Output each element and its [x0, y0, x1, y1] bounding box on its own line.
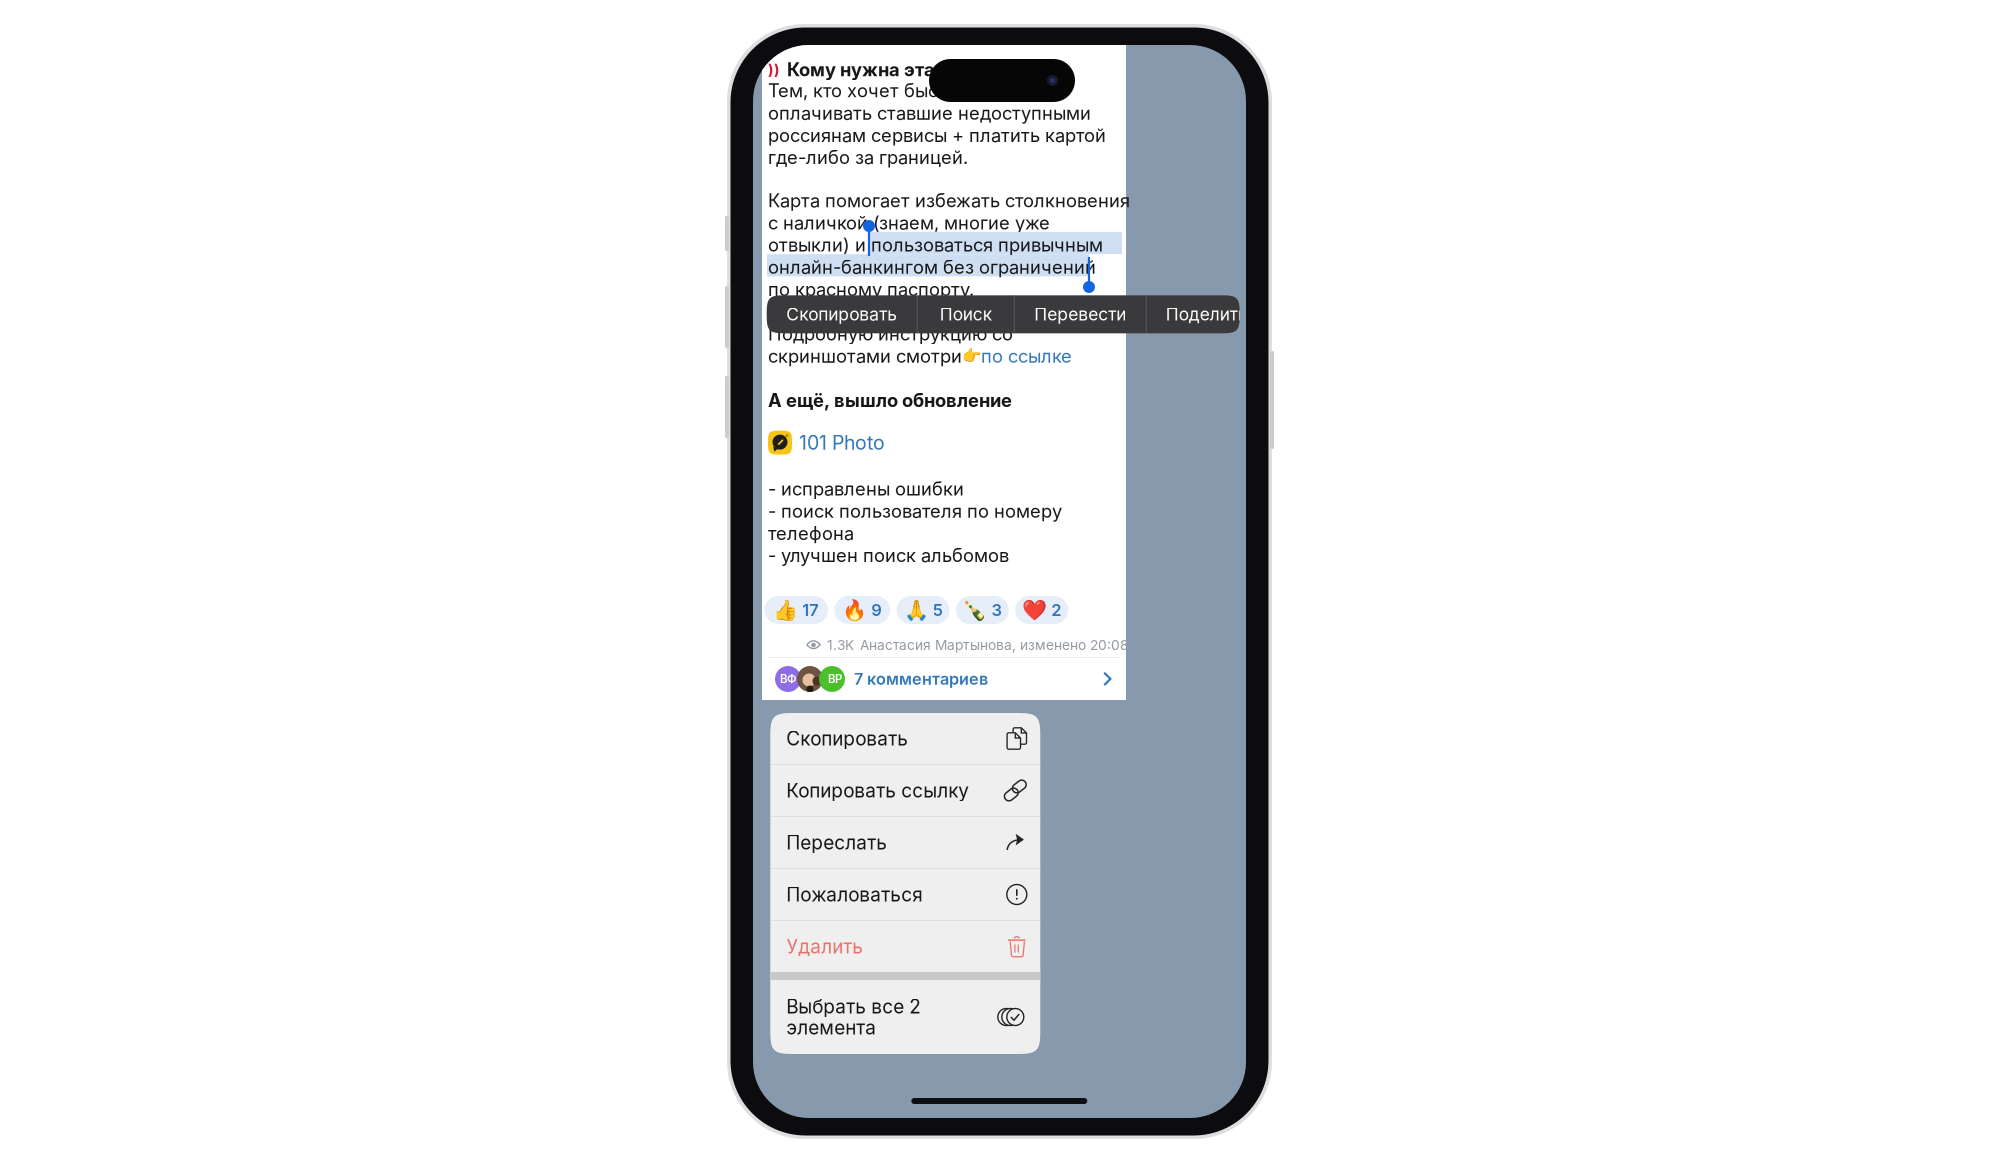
staticText: 9 — [871, 600, 882, 620]
staticText: Поделиться — [1166, 304, 1268, 325]
staticText: 7 комментариев — [854, 669, 988, 689]
button[interactable]: по ссылке — [981, 345, 1072, 367]
staticText: - поиск пользователя по номеру — [768, 500, 1062, 522]
staticText: 3 — [991, 600, 1002, 620]
staticText: ВР — [828, 672, 842, 686]
staticText: онлайн-банкингом без ограничений — [768, 256, 1096, 278]
button[interactable]: Поделиться — [1147, 295, 1287, 333]
staticText: ВФ — [780, 672, 796, 686]
staticText: Пожаловаться — [786, 883, 922, 906]
staticText: 👍 — [773, 598, 798, 622]
staticText: 5 — [933, 600, 943, 620]
staticText: Скопировать — [786, 727, 908, 750]
staticText: 101 Photo — [799, 431, 885, 454]
staticText: Скопировать — [786, 304, 897, 325]
button[interactable]: Нравится, 17 — [764, 596, 828, 624]
staticText: 🔥 — [842, 598, 867, 622]
staticText: 1.3K — [827, 637, 854, 653]
button[interactable]: Огонь, 9 — [834, 596, 890, 624]
button[interactable]: Копировать ссылку — [770, 765, 1040, 816]
staticText: ❤️ — [1022, 598, 1047, 622]
staticText: Выбрать все 2 — [786, 995, 921, 1018]
staticText: 🍾 — [962, 598, 987, 622]
staticText: - исправлены ошибки — [768, 478, 964, 500]
staticText: 🙏 — [904, 598, 929, 622]
staticText: Кому нужна эта карта? — [787, 59, 1003, 81]
button[interactable]: Скопировать — [767, 295, 917, 333]
staticText: А ещё, вышло обновление — [768, 389, 1012, 411]
button[interactable]: Спасибо, 5 — [897, 596, 950, 624]
button[interactable]: 101 Photo — [768, 431, 885, 455]
staticText: элемента — [786, 1016, 876, 1039]
button[interactable]: Выбрать все 2 — [770, 980, 1040, 1054]
staticText: телефона — [768, 522, 854, 544]
staticText: 17 — [802, 600, 819, 620]
staticText: Переслать — [786, 831, 887, 854]
button[interactable]: Скопировать — [770, 713, 1040, 764]
button[interactable]: ВФ — [762, 658, 1126, 700]
staticText: по ссылке — [981, 345, 1072, 367]
staticText: где-либо за границей. — [768, 146, 968, 168]
staticText: Копировать ссылку — [786, 779, 969, 802]
staticText: Карта помогает избежать столкновения — [768, 189, 1130, 212]
staticText: Анастасия Мартынова, изменено 20:08 — [860, 637, 1128, 653]
button[interactable]: Поиск — [918, 295, 1014, 333]
button[interactable]: Переслать — [770, 817, 1040, 868]
staticText: 👉 — [962, 347, 981, 365]
staticText: по красному паспорту. — [768, 278, 974, 300]
button[interactable]: Удалить — [770, 921, 1040, 972]
staticText: Подробную инструкцию со — [768, 323, 1013, 345]
staticText: с наличкой (знаем, многие уже — [768, 212, 1050, 234]
staticText: Перевести — [1034, 304, 1126, 325]
button[interactable]: Сердце, 2 — [1015, 596, 1068, 624]
staticText: отвыкли) и пользоваться привычным — [768, 234, 1103, 256]
button[interactable]: Шампанское, 3 — [956, 596, 1009, 624]
staticText: Тем, кто хочет быстро и просто — [768, 80, 1052, 102]
staticText: скриншотами смотри — [768, 345, 962, 367]
staticText: Поиск — [940, 304, 992, 325]
staticText: Удалить — [786, 935, 863, 958]
staticText: 2 — [1051, 600, 1061, 620]
staticText: россиянам сервисы + платить картой — [768, 124, 1106, 146]
button[interactable]: Пожаловаться — [770, 869, 1040, 920]
staticText: )) — [768, 61, 780, 78]
staticText: оплачивать ставшие недоступными — [768, 102, 1091, 124]
button[interactable]: Перевести — [1015, 295, 1146, 333]
staticText: - улучшен поиск альбомов — [768, 544, 1009, 566]
